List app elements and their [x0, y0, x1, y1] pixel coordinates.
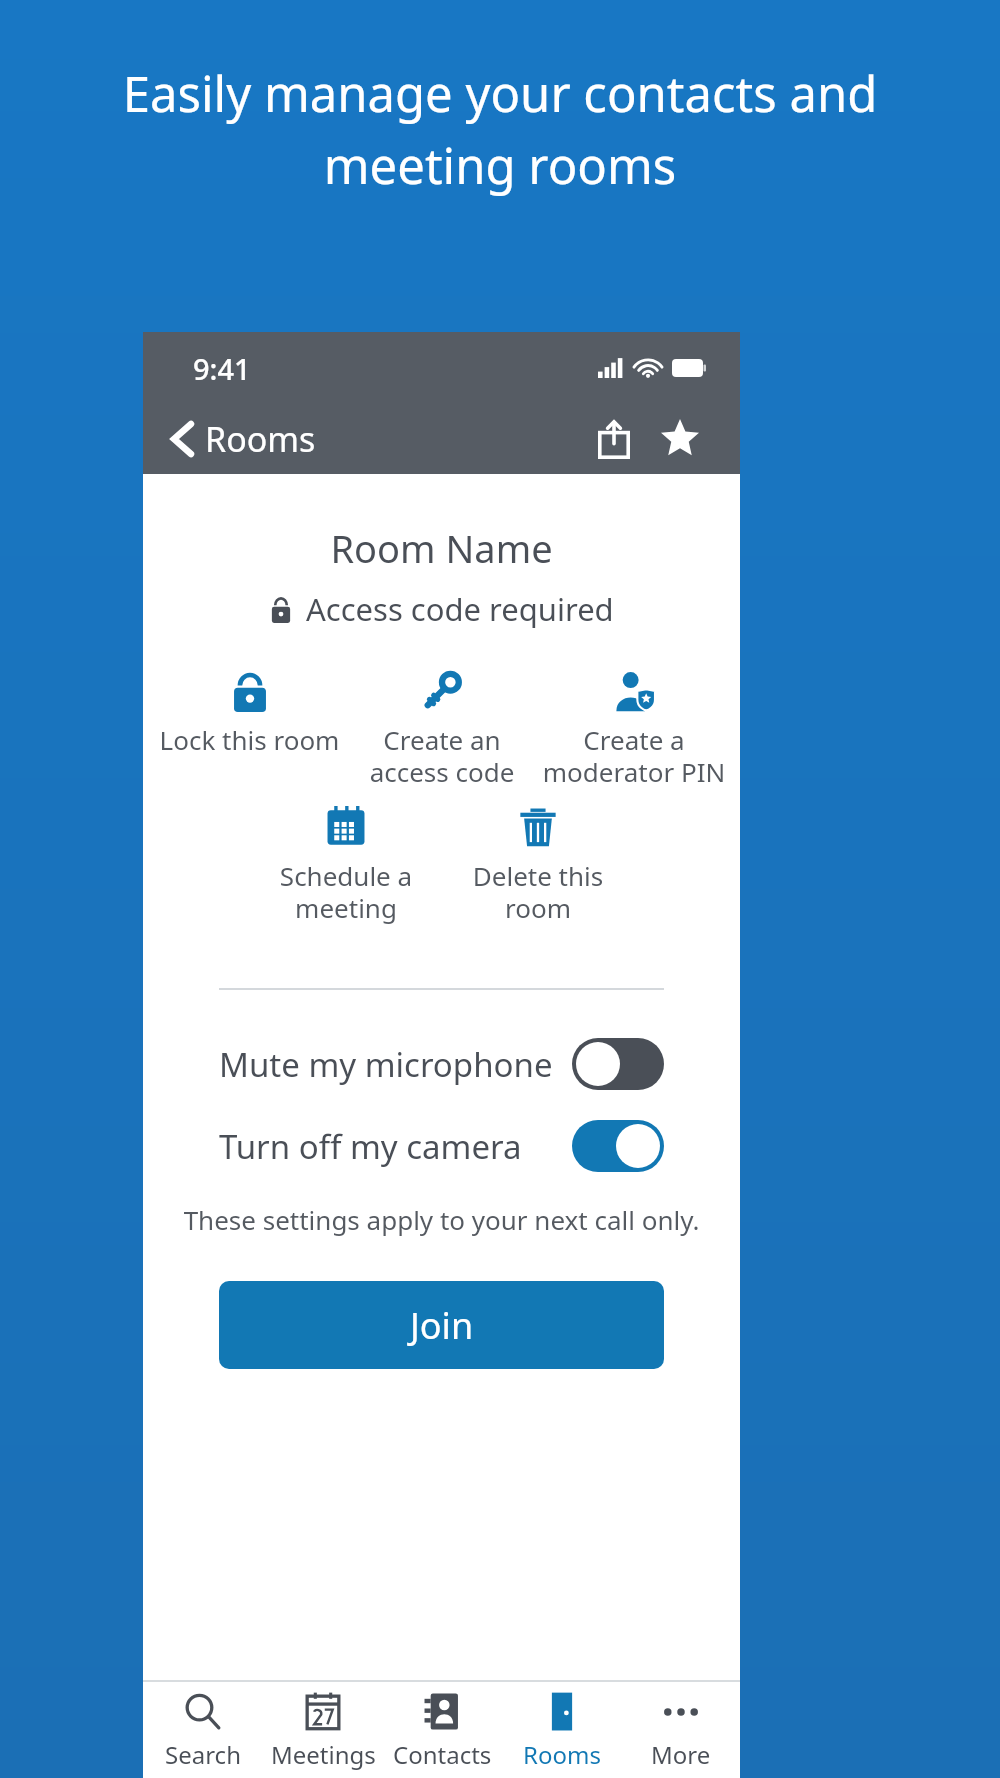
- staticText: Rooms: [205, 416, 316, 462]
- other: Favorite: [660, 419, 700, 459]
- other: Back: [171, 422, 191, 456]
- button[interactable]: Delete this room: [442, 806, 634, 926]
- button[interactable]: More: [621, 1682, 740, 1778]
- staticText: Delete this room: [446, 858, 630, 926]
- button[interactable]: Create an access code: [346, 670, 538, 790]
- staticText: Create a moderator PIN: [542, 722, 726, 790]
- staticText: Rooms: [523, 1738, 601, 1771]
- button[interactable]: Share: [590, 411, 638, 467]
- button[interactable]: Contacts: [383, 1682, 502, 1778]
- staticText: More: [651, 1738, 711, 1771]
- staticText: 9:41: [193, 349, 251, 388]
- button[interactable]: Meetings: [263, 1682, 383, 1778]
- button[interactable]: Search: [143, 1682, 263, 1778]
- button[interactable]: Lock this room: [153, 670, 346, 757]
- button[interactable]: Rooms: [502, 1682, 621, 1778]
- staticText: These settings apply to your next call o…: [143, 1202, 740, 1237]
- button[interactable]: Schedule a meeting: [250, 806, 442, 926]
- staticText: Meetings: [271, 1738, 376, 1771]
- button[interactable]: Create a moderator PIN: [538, 670, 730, 790]
- staticText: Room Name: [143, 522, 740, 574]
- staticText: Mute my microphone: [219, 1042, 572, 1087]
- button[interactable]: Back: [163, 410, 324, 468]
- staticText: Turn off my camera: [219, 1124, 572, 1169]
- staticText: Create an access code: [350, 722, 534, 790]
- button[interactable]: Turn off my camera: [219, 1120, 664, 1172]
- staticText: Access code required: [306, 588, 614, 630]
- button[interactable]: Mute my microphone: [219, 1038, 664, 1090]
- staticText: Schedule a meeting: [254, 858, 438, 926]
- staticText: Easily manage your contacts and meeting …: [56, 60, 944, 198]
- button[interactable]: Join: [219, 1281, 664, 1369]
- staticText: Contacts: [393, 1738, 492, 1771]
- staticText: Search: [165, 1738, 241, 1771]
- staticText: Join: [410, 1301, 474, 1350]
- other: Share: [598, 419, 630, 459]
- button[interactable]: Favorite: [652, 411, 708, 467]
- staticText: Lock this room: [157, 722, 342, 757]
